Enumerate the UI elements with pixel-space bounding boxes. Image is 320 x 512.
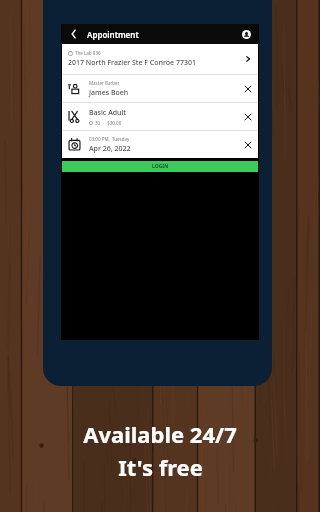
staticText: Basic Adult [89,108,127,118]
staticText: Apr 26, 2022 [89,144,131,154]
button[interactable]: The Lab 936 [62,44,258,74]
staticText: 30 $30.00 [95,120,122,126]
staticText: It's free [118,452,203,482]
button[interactable]: Remove [243,140,252,149]
staticText: 03:00 PM, Tuesday [89,136,130,142]
button[interactable]: Back [67,27,81,41]
button[interactable]: 03:00 PM, Tuesday [62,131,258,158]
staticText: 2017 North Frazier Ste F Conroe 77301 [68,58,196,68]
button[interactable]: Remove [243,112,252,121]
staticText: Master Barber [89,80,120,86]
button[interactable]: LOGIN [62,161,258,172]
staticText: Available 24/7 [83,419,237,449]
button[interactable]: Profile [239,27,253,41]
button[interactable]: Basic Adult [62,103,258,130]
staticText: The Lab 936 [75,50,101,56]
staticText: James Boeh [89,88,129,98]
button[interactable]: Master Barber [62,75,258,102]
staticText: Appointment [87,29,139,40]
button[interactable]: Remove [243,84,252,93]
staticText: LOGIN [152,163,169,170]
